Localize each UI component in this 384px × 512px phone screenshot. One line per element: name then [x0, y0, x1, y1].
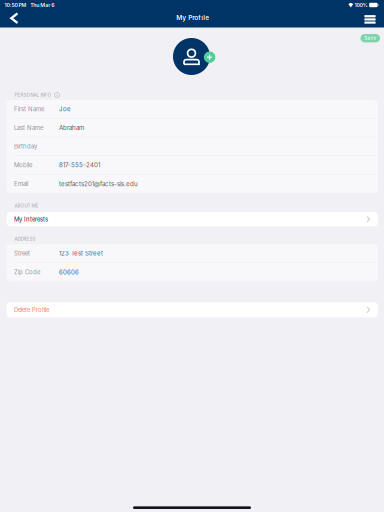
- staticText: Street: [14, 250, 30, 257]
- button[interactable]: Delete Profile: [6, 302, 378, 317]
- staticText: 817-555-2401: [59, 161, 100, 169]
- staticText: 123 Test Street: [59, 250, 103, 257]
- staticText: 60606: [59, 268, 79, 276]
- staticText: Email: [14, 180, 28, 188]
- button[interactable]: My Interests: [6, 212, 378, 226]
- staticText: PERSONAL INFO: [15, 92, 52, 98]
- staticText: ADDRESS: [15, 236, 36, 242]
- button[interactable]: Back: [2, 10, 26, 27]
- staticText: Last Name: [14, 124, 43, 131]
- staticText: Save: [364, 35, 376, 41]
- staticText: 10:50 PM: [5, 2, 27, 8]
- staticText: 100%: [355, 2, 368, 8]
- staticText: testfacts201@facts-sis.edu: [59, 180, 138, 188]
- staticText: Birthday: [14, 143, 37, 150]
- button[interactable]: Menu: [358, 11, 382, 28]
- staticText: Delete Profile: [14, 306, 49, 313]
- staticText: ABOUT ME: [15, 203, 39, 209]
- staticText: Zip Code: [14, 268, 40, 276]
- staticText: My Interests: [14, 216, 48, 223]
- staticText: First Name: [14, 105, 44, 113]
- staticText: Mobile: [14, 161, 32, 169]
- staticText: Thu Mar 6: [30, 2, 54, 8]
- button[interactable]: Save: [360, 34, 380, 42]
- staticText: My Profile: [176, 14, 209, 21]
- staticText: Joe: [59, 105, 71, 113]
- staticText: Abraham: [59, 124, 84, 131]
